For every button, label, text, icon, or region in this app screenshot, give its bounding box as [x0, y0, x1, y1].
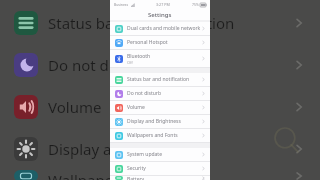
button[interactable]: Dual cards and mobile network: [110, 22, 210, 36]
button[interactable]: Battery: [110, 176, 210, 180]
button[interactable]: Display and Brightness: [110, 115, 210, 129]
staticText: Display and Brightness: [127, 118, 181, 125]
button[interactable]: Display and Brightness: [0, 128, 320, 170]
button[interactable]: Volume: [110, 101, 210, 115]
staticText: Display and Brightness: [48, 139, 210, 159]
button[interactable]: Status bar and notification: [110, 73, 210, 87]
button[interactable]: Wallpapers and Fonts: [110, 129, 210, 143]
button[interactable]: Security: [110, 162, 210, 176]
staticText: 3:27 PM: [156, 2, 170, 7]
button[interactable]: Personal Hotspot: [110, 36, 210, 50]
staticText: Security: [127, 165, 146, 172]
staticText: Business: [114, 2, 129, 7]
staticText: Wallpapers and Fonts: [48, 170, 200, 180]
staticText: Off: [127, 60, 133, 65]
staticText: System update: [127, 151, 162, 158]
staticText: Personal Hotspot: [127, 39, 168, 46]
button[interactable]: Do not disturb: [0, 44, 320, 86]
staticText: 75%: [192, 2, 199, 7]
button[interactable]: Volume: [0, 86, 320, 128]
button[interactable]: System update: [110, 148, 210, 162]
staticText: Do not disturb: [48, 55, 150, 75]
button[interactable]: Do not disturb: [110, 87, 210, 101]
other: Search: [274, 128, 300, 154]
staticText: Do not disturb: [127, 90, 161, 97]
button[interactable]: Bluetooth: [110, 50, 210, 68]
staticText: Battery: [127, 176, 145, 180]
staticText: Dual cards and mobile network: [127, 25, 201, 32]
staticText: Status bar and notification: [127, 76, 190, 83]
staticText: Bluetooth: [127, 53, 151, 60]
staticText: Settings: [148, 11, 172, 19]
staticText: Volume: [127, 104, 145, 111]
staticText: Status bar and notification: [48, 13, 235, 33]
staticText: Volume: [48, 97, 102, 117]
button[interactable]: Wallpapers and Fonts: [0, 170, 320, 180]
button[interactable]: Status bar and notification: [0, 2, 320, 44]
staticText: Wallpapers and Fonts: [127, 132, 178, 139]
